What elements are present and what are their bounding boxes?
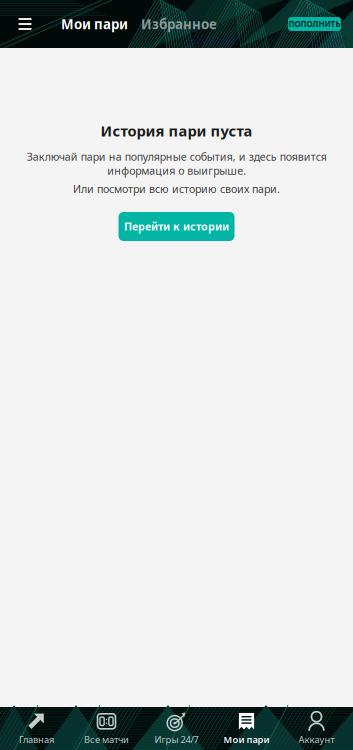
button[interactable]: Мои пари <box>211 707 281 750</box>
staticText: История пари пуста <box>100 121 252 140</box>
staticText: Перейти к истории <box>124 219 229 234</box>
staticText: Мои пари <box>61 15 128 33</box>
staticText: Все матчи <box>84 733 129 746</box>
button[interactable]: Menu <box>0 0 54 48</box>
button[interactable]: Игры 24/7 <box>141 707 211 750</box>
button[interactable]: Все матчи <box>71 707 141 750</box>
staticText: Заключай пари на популярные события, и з… <box>26 149 326 178</box>
button[interactable]: Перейти к истории <box>118 212 234 241</box>
button[interactable]: Мои пари <box>54 0 135 48</box>
staticText: Аккаунт <box>298 733 334 746</box>
button[interactable]: Аккаунт <box>281 707 351 750</box>
staticText: Главная <box>19 733 54 746</box>
staticText: Мои пари <box>223 733 269 746</box>
staticText: Игры 24/7 <box>154 733 198 746</box>
staticText: Или посмотри всю историю своих пари. <box>73 182 280 196</box>
button[interactable]: ПОПОЛНИТЬ <box>288 17 341 31</box>
staticText: Избранное <box>141 15 217 33</box>
button[interactable]: Главная <box>1 707 71 750</box>
staticText: ПОПОЛНИТЬ <box>288 19 340 29</box>
button[interactable]: Избранное <box>135 0 223 48</box>
